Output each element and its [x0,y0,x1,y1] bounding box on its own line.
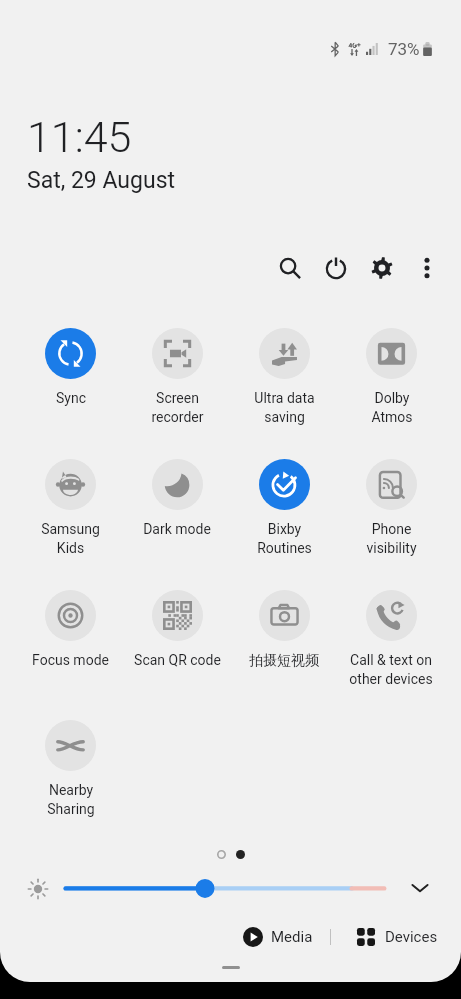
button[interactable]: Screen recorder [123,328,231,436]
staticText: Samsung Kids [41,521,100,556]
button[interactable]: Phone visibility [337,459,445,567]
staticText: Scan QR code [134,652,221,668]
staticText: Bixby Routines [257,521,312,556]
staticText: Dolby Atmos [371,390,413,425]
button[interactable]: Power [316,248,356,288]
button[interactable]: Devices [357,922,438,952]
staticText: Focus mode [32,652,109,668]
staticText: 11:45 [27,112,132,162]
staticText: Screen recorder [151,390,204,425]
staticText: Nearby Sharing [47,782,95,817]
staticText: Dark mode [143,521,211,537]
button[interactable]: Dark mode [123,459,231,567]
staticText: Phone visibility [366,521,417,556]
button[interactable]: Media [243,922,313,952]
staticText: Sync [56,390,86,406]
button[interactable]: More options [407,248,447,288]
button[interactable]: Settings [362,248,402,288]
staticText: Call & text on other devices [349,652,433,687]
staticText: Sat, 29 August [27,167,176,194]
button[interactable]: Bixby Routines [230,459,338,567]
button[interactable]: Ultra data saving [230,328,338,436]
button[interactable]: Dolby Atmos [337,328,445,436]
button[interactable]: Call & text on other devices [337,590,445,698]
button[interactable]: Expand [404,872,436,904]
button[interactable]: 拍摄短视频 [230,590,338,698]
staticText: Media [271,928,313,946]
button[interactable]: Search [270,248,310,288]
button[interactable]: Samsung Kids [16,459,124,567]
staticText: Devices [385,928,438,946]
button[interactable]: Scan QR code [123,590,231,698]
button[interactable]: Focus mode [16,590,124,698]
button[interactable]: Sync [16,328,124,436]
staticText: Ultra data saving [254,390,315,425]
staticText: 73% [388,39,420,59]
button[interactable]: Nearby Sharing [16,720,124,828]
staticText: 拍摄短视频 [249,652,319,670]
